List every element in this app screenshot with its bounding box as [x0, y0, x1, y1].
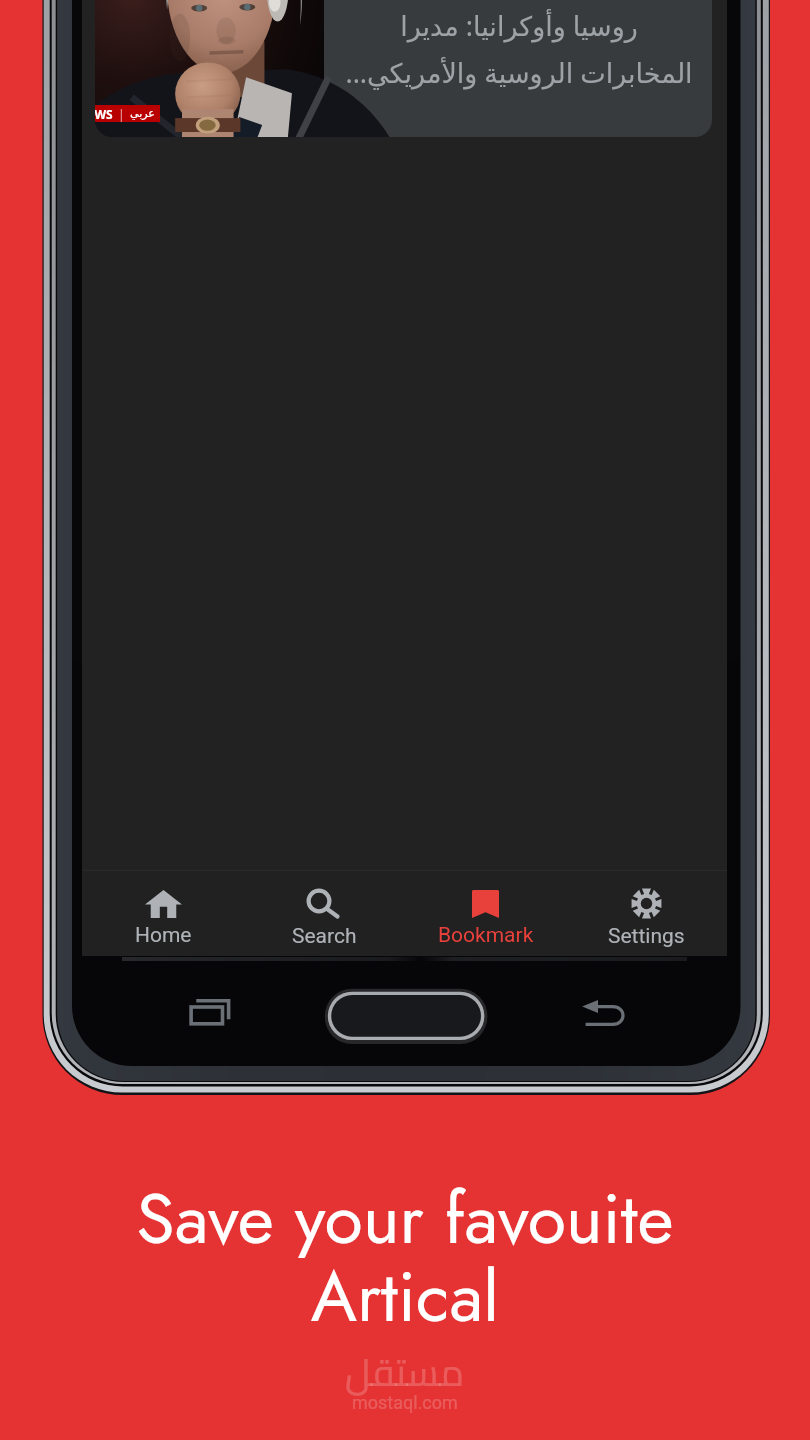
staticText: | [118, 106, 125, 122]
staticText: مستقل [345, 1336, 465, 1396]
staticText: mostaql.com [352, 1392, 458, 1413]
button[interactable]: Home [82, 870, 244, 956]
staticText: Save your favouite Artical [136, 1168, 674, 1348]
staticText: عربي [130, 107, 155, 120]
staticText: NEWS [95, 106, 113, 122]
staticText: Settings [608, 924, 685, 949]
button[interactable]: Settings [566, 870, 727, 956]
button[interactable]: Bookmark [405, 870, 566, 956]
staticText: روسيا وأوكرانيا: مديرا المخابرات الروسية… [345, 7, 693, 91]
button[interactable]: NEWS [95, 0, 712, 137]
staticText: Home [135, 923, 192, 948]
staticText: Bookmark [438, 923, 534, 948]
staticText: Search [292, 924, 357, 949]
button[interactable]: Search [244, 870, 405, 956]
